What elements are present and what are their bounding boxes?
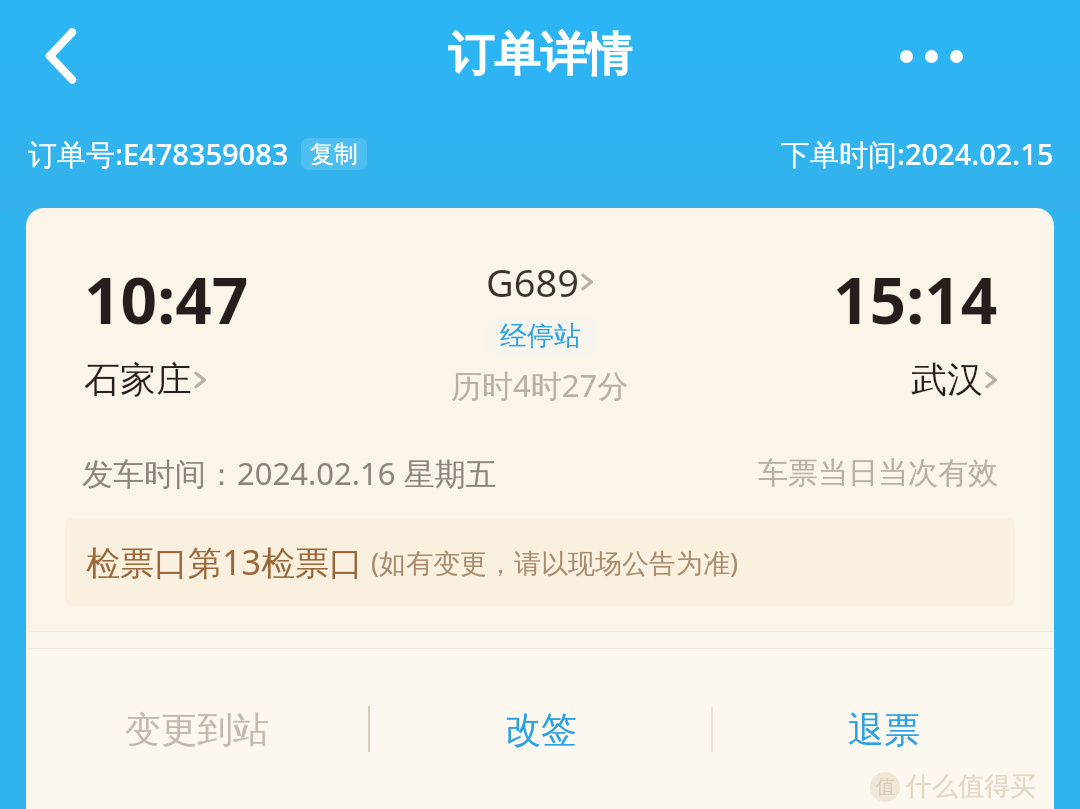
staticText: 发车时间：2024.02.16 星期五 bbox=[82, 452, 497, 494]
button[interactable]: 退票 bbox=[713, 649, 1054, 809]
staticText: 订单详情 bbox=[448, 26, 632, 84]
button[interactable]: 改签 bbox=[370, 649, 711, 809]
staticText: G689 bbox=[486, 256, 579, 308]
staticText: (如有变更，请以现场公告为准) bbox=[371, 544, 739, 581]
staticText: 什么值得买 bbox=[906, 770, 1036, 803]
staticText: 武汉 bbox=[911, 357, 983, 402]
staticText: 变更到站 bbox=[125, 707, 269, 752]
button[interactable]: 变更到站 bbox=[26, 649, 368, 809]
staticText: 下单时间:2024.02.15 bbox=[781, 134, 1054, 174]
staticText: 改签 bbox=[505, 707, 577, 752]
staticText: 值 bbox=[876, 775, 895, 799]
button[interactable]: Back bbox=[22, 16, 98, 96]
button[interactable]: More options bbox=[888, 16, 974, 96]
button[interactable]: 复制 bbox=[301, 138, 367, 170]
staticText: 退票 bbox=[848, 707, 920, 752]
staticText: 15:14 bbox=[833, 256, 998, 343]
button[interactable]: 检票口第13检票口 bbox=[65, 518, 1015, 606]
staticText: 10:47 bbox=[84, 256, 249, 343]
staticText: 复制 bbox=[310, 139, 358, 169]
staticText: 检票口第13检票口 bbox=[86, 539, 363, 585]
button[interactable]: 经停站 bbox=[486, 318, 595, 354]
button[interactable]: G689 bbox=[486, 256, 594, 308]
button[interactable]: 石家庄 bbox=[84, 357, 207, 402]
staticText: 订单号:E478359083 bbox=[28, 134, 289, 174]
staticText: 石家庄 bbox=[84, 357, 192, 402]
staticText: 历时4时27分 bbox=[451, 364, 629, 406]
button[interactable]: 武汉 bbox=[911, 357, 998, 402]
staticText: 车票当日当次有效 bbox=[758, 454, 998, 492]
staticText: 经停站 bbox=[500, 319, 581, 353]
